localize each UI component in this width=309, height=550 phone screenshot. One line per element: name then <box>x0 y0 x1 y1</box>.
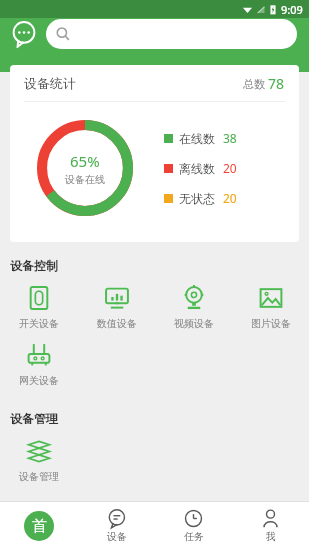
staticText: 开关设备 <box>19 317 59 330</box>
staticText: 数值设备 <box>97 317 137 330</box>
staticText: 总数 <box>243 76 268 91</box>
button[interactable]: 设备管理 <box>0 432 77 489</box>
button[interactable]: 网关设备 <box>0 336 77 393</box>
staticText: 78 <box>268 74 285 93</box>
staticText: 设备 <box>107 530 127 543</box>
staticText: 设备在线 <box>65 173 105 186</box>
staticText: 首 <box>32 517 47 536</box>
staticText: 设备管理 <box>10 411 58 426</box>
button[interactable]: 我 <box>232 502 309 550</box>
staticText: 设备管理 <box>19 470 59 483</box>
button[interactable] <box>46 19 297 49</box>
staticText: 视频设备 <box>174 317 214 330</box>
staticText: 20 <box>223 160 237 176</box>
staticText: 图片设备 <box>251 317 291 330</box>
button[interactable]: 任务 <box>155 502 232 550</box>
button[interactable]: 数值设备 <box>78 279 155 336</box>
button[interactable]: 图片设备 <box>232 279 309 336</box>
staticText: 在线数 <box>179 131 215 146</box>
button[interactable]: 首页 <box>0 502 78 550</box>
staticText: 38 <box>223 130 237 146</box>
staticText: 网关设备 <box>19 374 59 387</box>
button[interactable]: 开关设备 <box>0 279 78 336</box>
button[interactable]: Messages <box>8 18 40 50</box>
staticText: 设备统计 <box>24 75 76 91</box>
button[interactable]: 设备 <box>78 502 155 550</box>
staticText: 无状态 <box>179 191 215 206</box>
staticText: 我 <box>266 530 276 543</box>
button[interactable]: 视频设备 <box>155 279 232 336</box>
staticText: 设备控制 <box>10 258 58 273</box>
staticText: 20 <box>223 190 237 206</box>
staticText: 9:09 <box>281 2 303 17</box>
staticText: 任务 <box>184 530 204 543</box>
staticText: 65% <box>70 151 100 171</box>
staticText: 离线数 <box>179 161 215 176</box>
